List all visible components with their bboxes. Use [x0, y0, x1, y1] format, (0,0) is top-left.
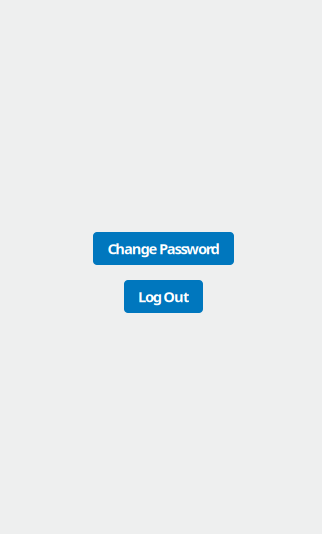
- button[interactable]: Log Out: [124, 280, 203, 313]
- staticText: Change Password: [107, 239, 220, 258]
- staticText: Log Out: [138, 287, 189, 306]
- button[interactable]: Change Password: [93, 232, 234, 265]
